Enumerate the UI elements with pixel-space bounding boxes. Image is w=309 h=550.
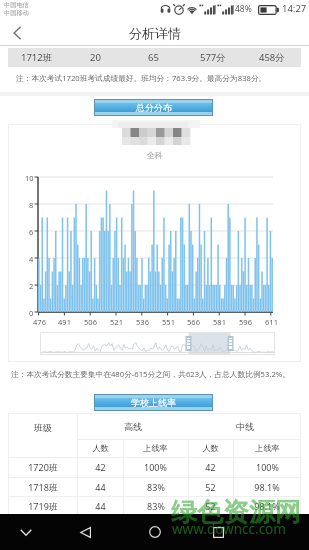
staticText: 551 <box>162 317 175 327</box>
staticText: 566 <box>187 317 200 327</box>
staticText: 42 <box>95 461 106 473</box>
staticText: 注：本次考试1720班考试成绩最好。班均分：763.9分。最高分为838分。 <box>16 73 267 84</box>
staticText: 611 <box>265 317 278 327</box>
staticText: 98.1% <box>254 500 280 512</box>
staticText: 全科 <box>147 150 163 160</box>
staticText: 注：本次考试分数主要集中在480分-615分之间，共623人，占总人数比例53.… <box>11 369 290 380</box>
staticText: 0 <box>29 308 34 318</box>
staticText: 10 <box>25 173 34 183</box>
staticText: 83% <box>147 481 165 493</box>
staticText: 42 <box>205 461 216 473</box>
staticText: 人数 <box>92 443 109 453</box>
staticText: 中国电信 <box>4 1 29 9</box>
staticText: 8 <box>29 200 34 210</box>
staticText: 52 <box>205 500 216 512</box>
staticText: 高线 <box>124 421 142 432</box>
button[interactable]: 主屏幕 <box>137 514 173 550</box>
staticText: 521 <box>110 317 123 327</box>
staticText: 100% <box>256 461 279 473</box>
staticText: 14:27 <box>282 2 307 15</box>
staticText: 65 <box>148 51 159 64</box>
button[interactable]: 总分分布 <box>94 99 213 116</box>
button[interactable]: 学校上线率 <box>94 394 213 411</box>
staticText: 44 <box>95 500 106 512</box>
staticText: 1720班 <box>28 461 58 473</box>
staticText: 44 <box>95 481 106 493</box>
staticText: 中国移动 <box>4 9 29 17</box>
staticText: 1719班 <box>28 500 58 512</box>
staticText: 506 <box>84 317 97 327</box>
staticText: 458分 <box>259 51 285 64</box>
staticText: 48% <box>235 3 252 15</box>
staticText: 上线率 <box>255 443 280 453</box>
staticText: 581 <box>213 317 226 327</box>
staticText: 人数 <box>202 443 219 453</box>
staticText: 20 <box>90 51 101 64</box>
staticText: 52 <box>205 481 216 493</box>
staticText: 6 <box>29 227 34 237</box>
staticText: 98.1% <box>254 481 280 493</box>
staticText: 4 <box>29 254 34 264</box>
staticText: 1712班 <box>21 51 53 64</box>
staticText: 1718班 <box>28 481 58 493</box>
staticText: 班级 <box>34 422 52 433</box>
staticText: 学校上线率 <box>131 397 176 408</box>
staticText: 83% <box>147 500 165 512</box>
staticText: 536 <box>136 317 149 327</box>
staticText: 577分 <box>200 51 226 64</box>
staticText: 上线率 <box>143 443 168 453</box>
staticText: 绿色资源网 <box>171 496 301 529</box>
staticText: 分析详情 <box>129 25 181 41</box>
staticText: 中线 <box>236 421 254 432</box>
button[interactable]: 收起键盘 <box>8 514 44 550</box>
staticText: 100% <box>144 461 167 473</box>
staticText: 476 <box>33 317 46 327</box>
staticText: 2 <box>29 281 34 291</box>
staticText: www.downcc.com <box>172 520 286 538</box>
staticText: 总分分布 <box>136 102 172 113</box>
button[interactable]: 返回 <box>0 20 34 45</box>
button[interactable]: 返回 <box>67 514 103 550</box>
staticText: 596 <box>239 317 252 327</box>
staticText: 491 <box>58 317 71 327</box>
button[interactable]: 最近任务 <box>200 514 236 550</box>
